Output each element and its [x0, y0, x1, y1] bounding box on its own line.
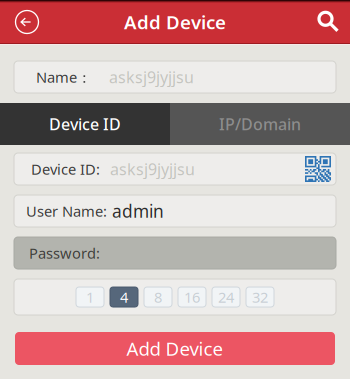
button[interactable]: 32: [246, 287, 274, 307]
staticText: 32: [252, 287, 268, 307]
button[interactable]: 4: [110, 287, 138, 307]
button[interactable]: Device ID: [0, 103, 170, 145]
staticText: 4: [120, 287, 128, 307]
button[interactable]: 16: [178, 287, 206, 307]
staticText: Password:: [29, 243, 100, 263]
staticText: User Name:: [26, 201, 107, 221]
staticText: Device ID: [49, 113, 121, 135]
staticText: 1: [86, 287, 94, 307]
button[interactable]: IP/Domain: [170, 103, 350, 145]
staticText: Device ID:: [31, 159, 100, 179]
staticText: IP/Domain: [219, 113, 301, 135]
button[interactable]: Scan QR code: [305, 153, 331, 185]
button[interactable]: Back: [0, 0, 48, 44]
staticText: asksj9jyjjsu: [110, 158, 195, 180]
staticText: Add Device: [126, 336, 223, 361]
button[interactable]: 8: [144, 287, 172, 307]
button[interactable]: 1: [76, 287, 104, 307]
staticText: 24: [218, 287, 234, 307]
staticText: admin: [112, 199, 164, 222]
button[interactable]: 24: [212, 287, 240, 307]
staticText: asksj9jyjjsu: [109, 66, 194, 88]
button[interactable]: Add Device: [15, 332, 335, 365]
staticText: 16: [184, 287, 200, 307]
staticText: Name：: [36, 67, 92, 87]
button[interactable]: Search: [308, 0, 350, 44]
staticText: 8: [154, 287, 162, 307]
staticText: Add Device: [124, 10, 226, 34]
